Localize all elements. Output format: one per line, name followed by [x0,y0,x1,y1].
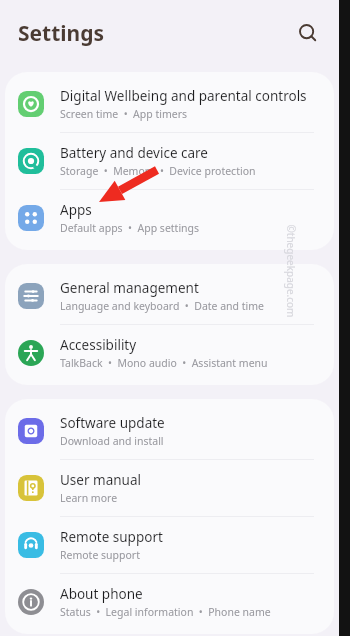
staticText: Digital Wellbeing and parental controls [60,87,307,105]
staticText: User manual [60,471,141,489]
button[interactable]: Search [291,16,325,50]
staticText: Settings [18,19,105,48]
staticText: ©thegeekpage.com [283,224,297,317]
button[interactable]: Apps [5,190,334,246]
staticText: TalkBack • Mono audio • Assistant menu [60,356,268,370]
button[interactable]: General management [5,268,334,324]
button[interactable]: Remote support [5,517,334,573]
staticText: Apps [60,201,92,219]
button[interactable]: Software update [5,403,334,459]
staticText: Battery and device care [60,144,208,162]
staticText: Screen time • App timers [60,107,188,121]
staticText: Remote support [60,528,163,546]
staticText: Download and install [60,434,164,448]
button[interactable]: User manual [5,460,334,516]
staticText: Software update [60,414,165,432]
staticText: General management [60,279,199,297]
staticText: Default apps • App settings [60,221,200,235]
button[interactable]: Digital Wellbeing and parental controls [5,76,334,132]
staticText: About phone [60,585,143,603]
button[interactable]: About phone [5,574,334,630]
staticText: Remote support [60,548,140,562]
staticText: Language and keyboard • Date and time [60,299,265,313]
button[interactable]: Battery and device care [5,133,334,189]
button[interactable]: Accessibility [5,325,334,381]
staticText: Status • Legal information • Phone name [60,605,271,619]
staticText: Storage • Memory • Device protection [60,164,256,178]
staticText: Accessibility [60,336,137,354]
staticText: Learn more [60,491,118,505]
